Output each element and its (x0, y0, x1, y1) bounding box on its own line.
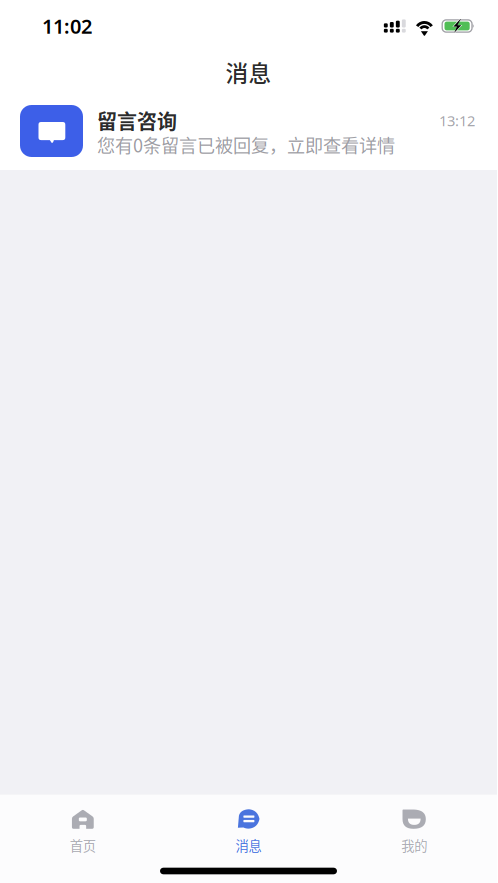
staticText: 首页 (70, 836, 96, 855)
button[interactable]: 首页 (0, 794, 166, 856)
button[interactable]: 留言咨询 (0, 92, 497, 170)
staticText: 13:12 (439, 111, 475, 130)
staticText: 11:02 (42, 13, 92, 39)
button[interactable]: 我的 (331, 794, 497, 856)
staticText: 您有0条留言已被回复，立即查看详情 (97, 131, 395, 158)
staticText: 我的 (401, 836, 427, 855)
button[interactable]: 消息 (166, 794, 331, 856)
staticText: 消息 (235, 836, 261, 855)
staticText: 留言咨询 (97, 106, 177, 135)
staticText: 消息 (225, 56, 271, 88)
